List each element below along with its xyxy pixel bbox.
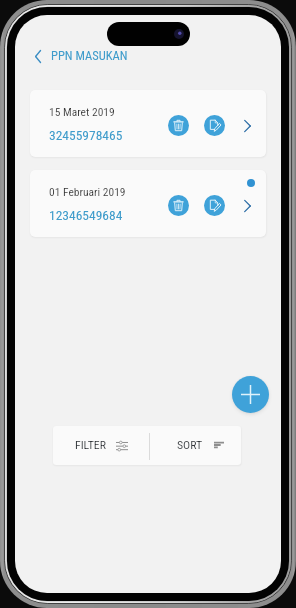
button[interactable]: Delete bbox=[168, 195, 189, 216]
button[interactable]: SORT bbox=[148, 426, 241, 465]
staticText: 12346549684 bbox=[49, 207, 123, 223]
staticText: SORT bbox=[177, 438, 203, 452]
staticText: FILTER bbox=[75, 438, 106, 452]
button[interactable]: 15 Maret 2019 bbox=[30, 90, 266, 157]
button[interactable]: FILTER bbox=[53, 426, 147, 465]
staticText: 15 Maret 2019 bbox=[49, 105, 115, 118]
button[interactable]: Open details bbox=[241, 196, 254, 216]
staticText: 32455978465 bbox=[49, 127, 123, 143]
button[interactable]: Back to PPN MASUKAN bbox=[27, 41, 157, 71]
staticText: 01 Februari 2019 bbox=[49, 185, 126, 198]
button[interactable]: Open details bbox=[241, 116, 254, 136]
button[interactable]: Delete bbox=[168, 115, 189, 136]
button[interactable]: Add new bbox=[232, 376, 269, 413]
staticText: PPN MASUKAN bbox=[51, 48, 128, 63]
button[interactable]: Edit bbox=[204, 195, 225, 216]
button[interactable]: Edit bbox=[204, 115, 225, 136]
button[interactable]: 01 Februari 2019 bbox=[30, 170, 266, 237]
